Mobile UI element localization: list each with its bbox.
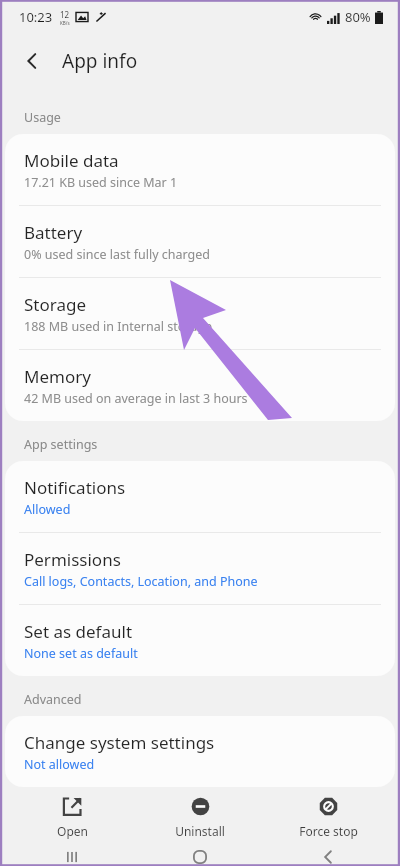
button[interactable]: Set as default (5, 605, 395, 676)
button[interactable]: Storage (5, 278, 395, 349)
button[interactable]: Memory (5, 350, 395, 421)
staticText: Open (57, 823, 88, 839)
staticText: Battery (24, 221, 83, 244)
staticText: Storage (24, 293, 87, 316)
button[interactable]: Home (144, 847, 256, 866)
staticText: Set as default (24, 620, 133, 643)
button[interactable]: Change system settings (5, 716, 395, 787)
staticText: 12 (60, 9, 70, 20)
staticText: 0% used since last fully charged (24, 246, 211, 263)
staticText: 42 MB used on average in last 3 hours (24, 390, 248, 407)
button[interactable]: Uninstall (144, 791, 256, 844)
button[interactable]: Force stop (272, 791, 384, 844)
staticText: 17.21 KB used since Mar 1 (24, 174, 178, 191)
staticText: Usage (24, 109, 61, 126)
button[interactable]: Back (14, 43, 50, 79)
staticText: 188 MB used in Internal storage (24, 318, 212, 335)
button[interactable]: Back (272, 847, 384, 866)
button[interactable]: Battery (5, 206, 395, 277)
staticText: App settings (24, 436, 98, 453)
staticText: App info (62, 48, 138, 74)
button[interactable]: Open (16, 791, 128, 844)
button[interactable]: Mobile data (5, 134, 395, 205)
staticText: Change system settings (24, 731, 215, 754)
button[interactable]: Permissions (5, 533, 395, 604)
button[interactable]: Recent apps (16, 847, 128, 866)
staticText: Not allowed (24, 756, 95, 773)
staticText: 10:23 (19, 8, 53, 26)
button[interactable]: Notifications (5, 461, 395, 532)
staticText: Call logs, Contacts, Location, and Phone (24, 573, 258, 590)
staticText: KB/s (60, 20, 70, 26)
staticText: Force stop (299, 823, 358, 839)
staticText: Allowed (24, 501, 71, 518)
staticText: 80% (345, 8, 371, 26)
staticText: Memory (24, 365, 91, 388)
staticText: Advanced (24, 691, 82, 708)
staticText: Uninstall (175, 823, 225, 839)
staticText: None set as default (24, 645, 138, 662)
staticText: Notifications (24, 476, 126, 499)
staticText: Permissions (24, 548, 121, 571)
staticText: Mobile data (24, 149, 119, 172)
